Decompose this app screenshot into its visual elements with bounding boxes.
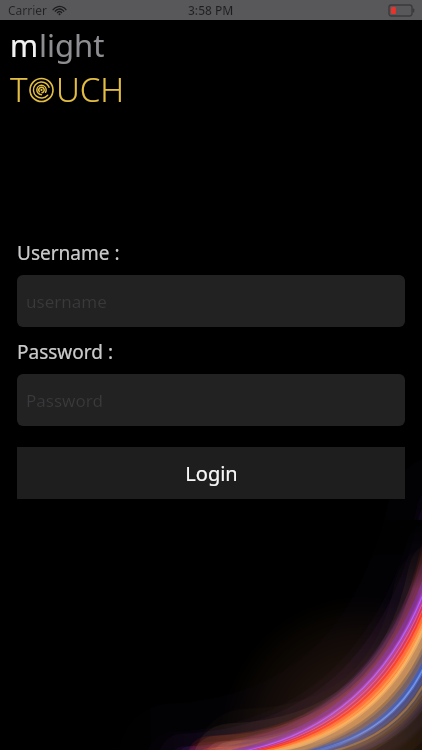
staticText: username	[26, 290, 107, 313]
staticText: m	[10, 25, 39, 66]
staticText: 3:58 PM	[188, 2, 234, 18]
staticText: UCH	[56, 67, 125, 112]
staticText: Carrier	[8, 2, 48, 18]
staticText: Password :	[17, 339, 113, 365]
staticText: T	[10, 67, 28, 112]
staticText: Username :	[17, 240, 120, 266]
button[interactable]: Login	[17, 447, 405, 499]
staticText: Login	[185, 460, 238, 487]
staticText: Password	[26, 389, 103, 412]
staticText: light	[39, 24, 105, 66]
